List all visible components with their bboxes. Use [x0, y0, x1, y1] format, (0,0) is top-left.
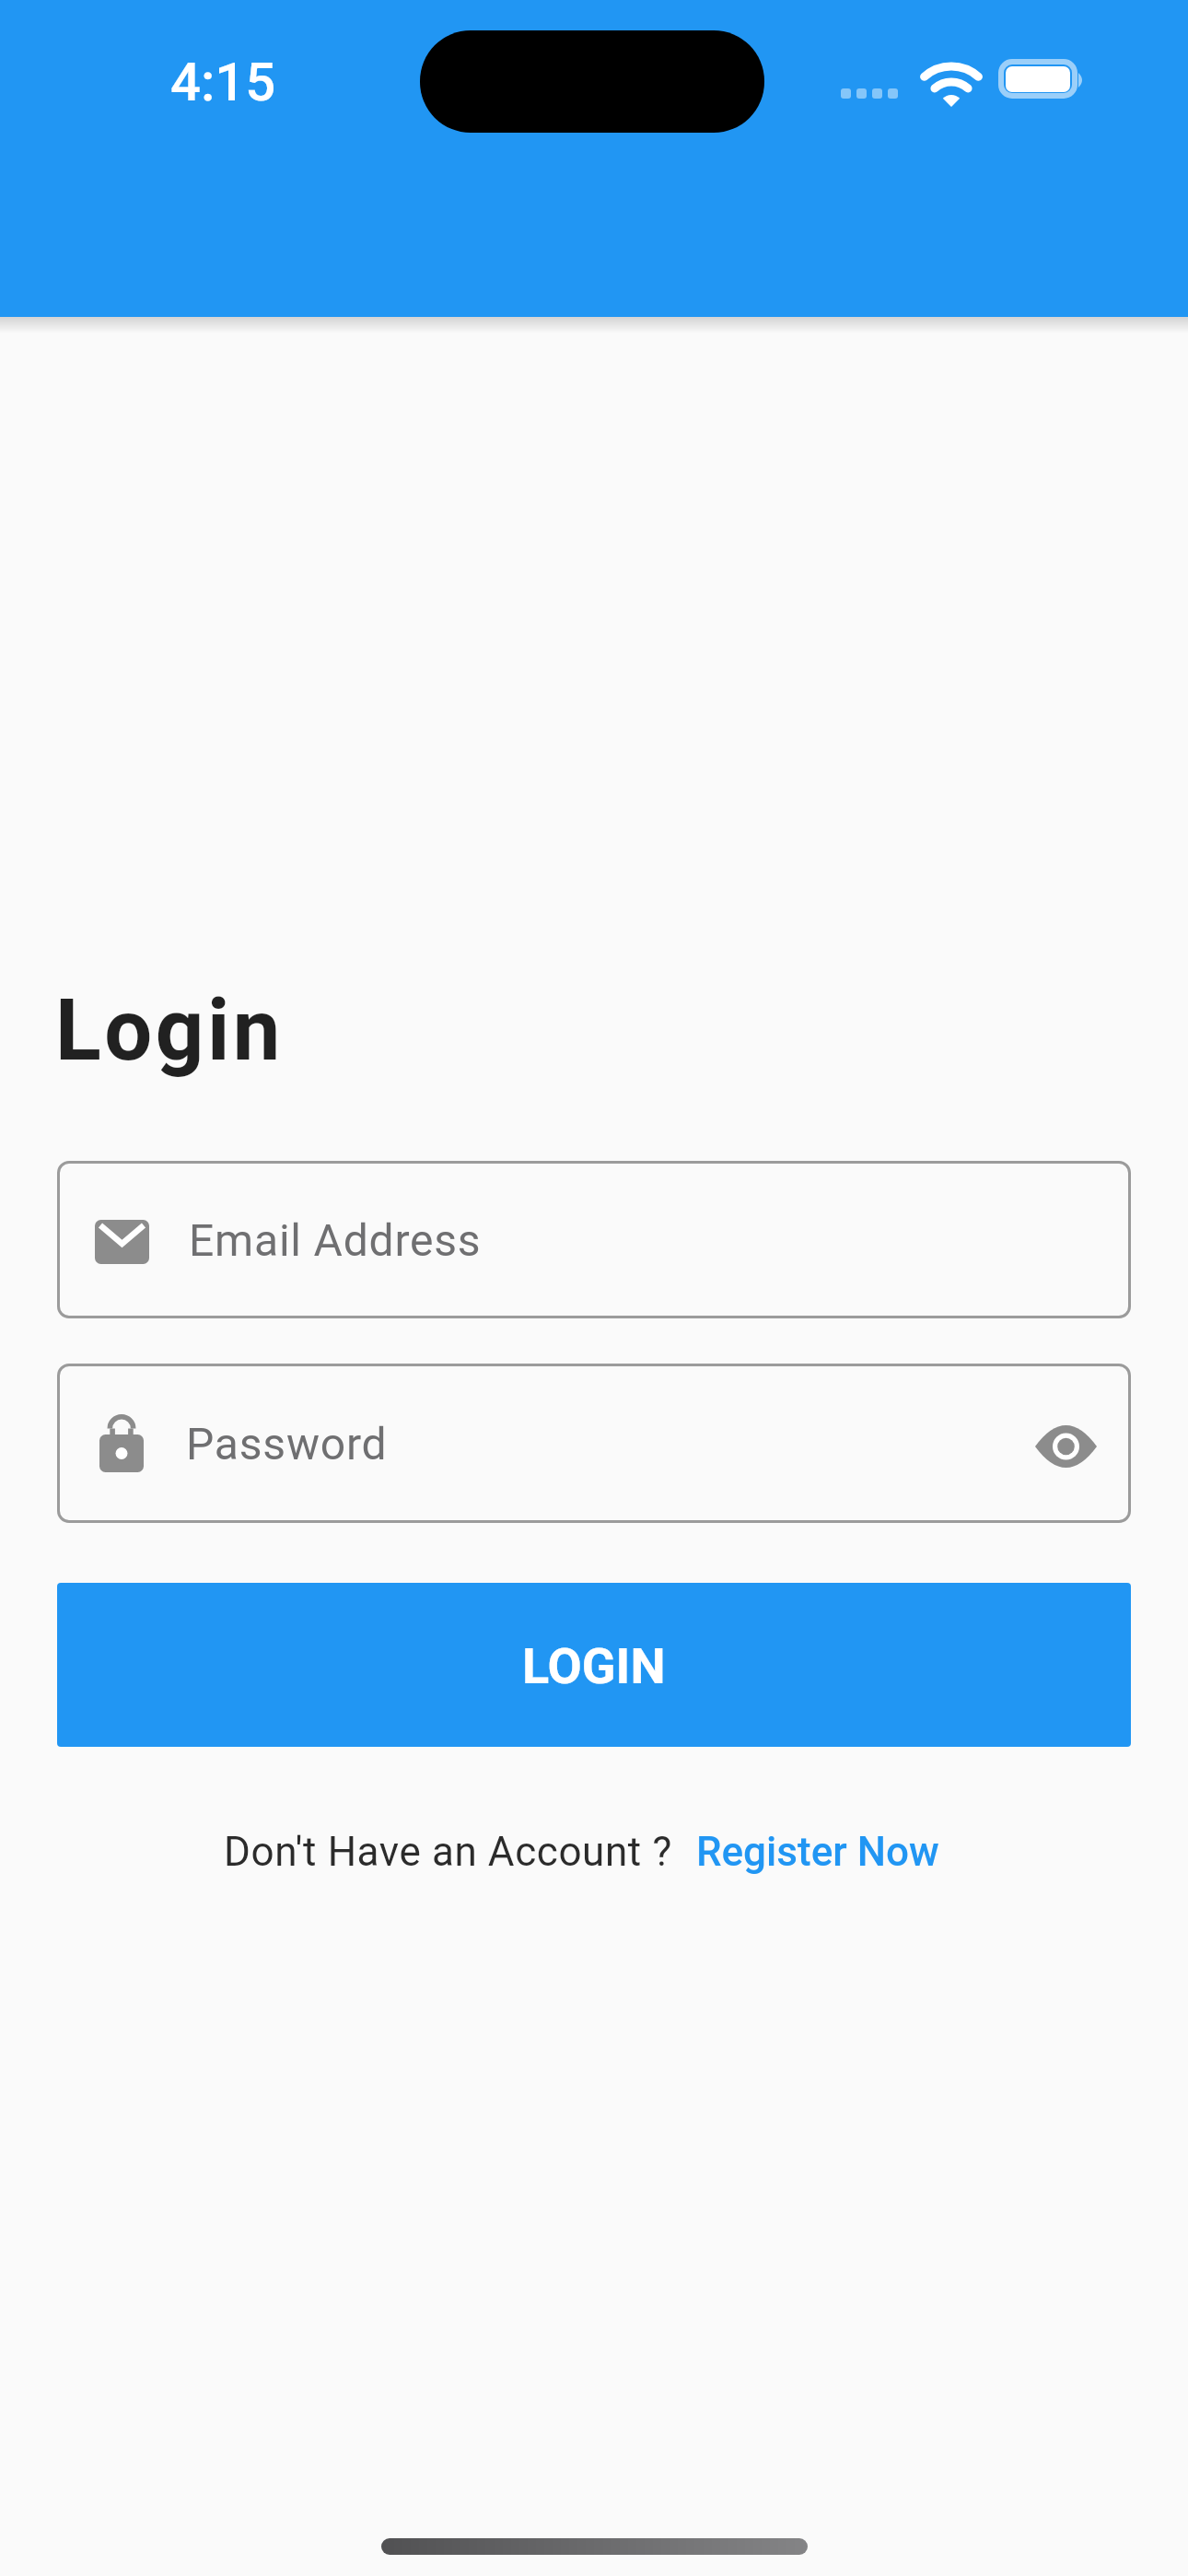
staticText: Don't Have an Account ? [224, 1828, 672, 1876]
button[interactable]: Register Now [696, 1828, 939, 1876]
button[interactable]: LOGIN [57, 1583, 1131, 1747]
button[interactable]: Password [57, 1364, 1131, 1523]
button[interactable]: Email Address [57, 1161, 1131, 1318]
staticText: LOGIN [522, 1637, 666, 1695]
staticText: 4:15 [170, 51, 276, 113]
staticText: Email Address [189, 1214, 482, 1266]
staticText: Login [55, 981, 284, 1081]
staticText: Password [186, 1418, 1035, 1469]
